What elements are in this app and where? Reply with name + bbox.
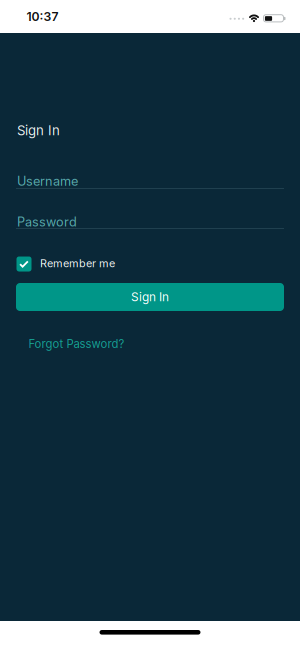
staticText: 10:37 bbox=[26, 9, 58, 24]
staticText: Remember me bbox=[40, 257, 115, 270]
staticText: Password bbox=[17, 214, 77, 230]
button[interactable]: Sign In bbox=[16, 283, 284, 311]
button[interactable]: Username bbox=[16, 173, 284, 189]
staticText: Sign In bbox=[17, 122, 60, 138]
button[interactable]: Forgot Password? bbox=[28, 337, 124, 351]
button[interactable]: Remember me bbox=[16, 256, 115, 271]
staticText: Sign In bbox=[131, 290, 169, 304]
staticText: Username bbox=[17, 173, 78, 189]
button[interactable]: Password bbox=[16, 213, 284, 229]
staticText: Forgot Password? bbox=[28, 337, 124, 351]
